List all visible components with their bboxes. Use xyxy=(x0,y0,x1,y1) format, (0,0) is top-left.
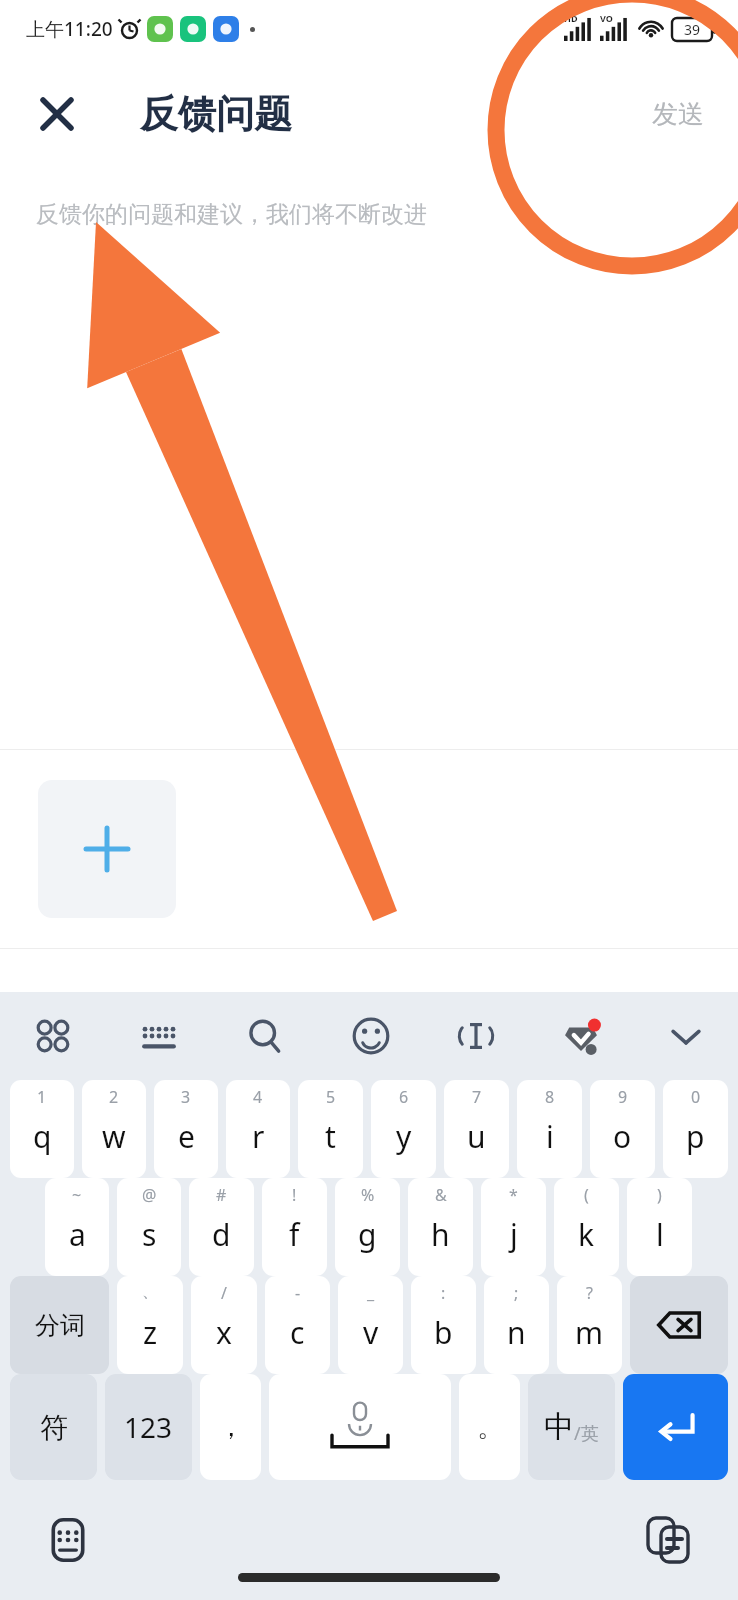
staticText: 1 xyxy=(37,1086,47,1108)
staticText: i xyxy=(546,1116,554,1157)
button[interactable]: & xyxy=(408,1178,473,1276)
staticText: m xyxy=(575,1312,604,1353)
staticText: l xyxy=(656,1214,664,1255)
button[interactable]: Switch keyboard xyxy=(40,1512,96,1568)
button[interactable]: @ xyxy=(117,1178,181,1276)
button[interactable]: 分词 xyxy=(10,1276,109,1374)
staticText: & xyxy=(435,1184,447,1206)
button[interactable]: 符 xyxy=(10,1374,97,1480)
button[interactable]: Edit text xyxy=(423,992,528,1080)
button[interactable]: ~ xyxy=(45,1178,109,1276)
staticText: q xyxy=(33,1116,52,1157)
staticText: HD xyxy=(564,12,578,24)
button[interactable]: 4 xyxy=(226,1080,290,1178)
button[interactable]: Backspace xyxy=(630,1276,728,1374)
button[interactable]: Keyboard layout xyxy=(106,992,212,1080)
button[interactable]: 6 xyxy=(371,1080,436,1178)
staticText: h xyxy=(431,1214,450,1255)
staticText: ， xyxy=(218,1411,244,1444)
button[interactable]: 7 xyxy=(444,1080,509,1178)
staticText: s xyxy=(142,1214,157,1255)
button[interactable]: Emoji xyxy=(318,992,423,1080)
button[interactable]: 1 xyxy=(10,1080,74,1178)
staticText: j xyxy=(510,1214,518,1255)
button[interactable]: / xyxy=(191,1276,257,1374)
staticText: ! xyxy=(292,1184,297,1206)
staticText: ; xyxy=(514,1282,519,1304)
button[interactable]: 8 xyxy=(517,1080,582,1178)
button[interactable]: 5 xyxy=(298,1080,363,1178)
button[interactable]: _ xyxy=(338,1276,403,1374)
button[interactable]: 。 xyxy=(459,1374,520,1480)
staticText: 123 xyxy=(124,1408,173,1446)
staticText: ? xyxy=(586,1282,593,1304)
staticText: VO xyxy=(600,12,613,24)
staticText: 0 xyxy=(691,1086,701,1108)
staticText: y xyxy=(396,1116,412,1157)
staticText: /英 xyxy=(574,1421,599,1446)
button[interactable]: Enter xyxy=(623,1374,728,1480)
button[interactable]: Clipboard xyxy=(640,1512,696,1568)
staticText: 2 xyxy=(109,1086,119,1108)
button[interactable]: * xyxy=(481,1178,546,1276)
staticText: t xyxy=(325,1116,336,1157)
button[interactable]: ? xyxy=(557,1276,622,1374)
button[interactable]: 0 xyxy=(663,1080,728,1178)
staticText: p xyxy=(686,1116,705,1157)
staticText: 。 xyxy=(477,1411,503,1444)
staticText: 8 xyxy=(545,1086,555,1108)
staticText: * xyxy=(509,1184,518,1206)
staticText: w xyxy=(102,1116,126,1157)
button[interactable]: Hide keyboard xyxy=(633,992,738,1080)
staticText: 反馈你的问题和建议，我们将不断改进 xyxy=(36,200,427,229)
button[interactable]: Add image xyxy=(38,780,176,918)
staticText: 6 xyxy=(399,1086,409,1108)
staticText: # xyxy=(216,1184,227,1206)
staticText: 5 xyxy=(326,1086,336,1108)
staticText: u xyxy=(467,1116,486,1157)
button[interactable]: ( xyxy=(554,1178,619,1276)
button[interactable]: ) xyxy=(627,1178,692,1276)
button[interactable]: 3 xyxy=(154,1080,218,1178)
button[interactable]: Space xyxy=(269,1374,451,1480)
button[interactable]: 9 xyxy=(590,1080,655,1178)
staticText: % xyxy=(361,1184,375,1206)
button[interactable]: 、 xyxy=(117,1276,183,1374)
staticText: ) xyxy=(657,1184,662,1206)
button[interactable]: : xyxy=(411,1276,476,1374)
staticText: 39 xyxy=(684,20,701,39)
button[interactable]: # xyxy=(189,1178,254,1276)
button[interactable]: Close xyxy=(22,79,92,149)
staticText: x xyxy=(216,1312,232,1353)
staticText: 、 xyxy=(142,1282,158,1302)
staticText: c xyxy=(290,1312,305,1353)
staticText: b xyxy=(434,1312,453,1353)
staticText: e xyxy=(178,1116,195,1157)
button[interactable]: ， xyxy=(200,1374,261,1480)
button[interactable]: 123 xyxy=(105,1374,192,1480)
staticText: d xyxy=(212,1214,231,1255)
button[interactable]: Search xyxy=(212,992,318,1080)
button[interactable]: 中 xyxy=(528,1374,615,1480)
staticText: 中 xyxy=(544,1408,574,1446)
staticText: - xyxy=(295,1282,301,1304)
staticText: ( xyxy=(584,1184,589,1206)
button[interactable]: Apps xyxy=(0,992,106,1080)
staticText: 反馈问题 xyxy=(140,90,292,138)
staticText: r xyxy=(252,1116,265,1157)
button[interactable]: 2 xyxy=(82,1080,146,1178)
staticText: _ xyxy=(367,1282,375,1304)
staticText: a xyxy=(69,1214,86,1255)
staticText: 符 xyxy=(40,1410,68,1445)
button[interactable]: ! xyxy=(262,1178,327,1276)
staticText: f xyxy=(289,1214,300,1255)
staticText: z xyxy=(143,1312,158,1353)
staticText: o xyxy=(613,1116,632,1157)
staticText: 7 xyxy=(472,1086,482,1108)
button[interactable]: ; xyxy=(484,1276,549,1374)
button[interactable]: Promotions xyxy=(528,992,633,1080)
button[interactable]: % xyxy=(335,1178,400,1276)
button[interactable]: 发送 xyxy=(636,88,720,141)
button[interactable]: - xyxy=(265,1276,330,1374)
staticText: 3 xyxy=(181,1086,191,1108)
